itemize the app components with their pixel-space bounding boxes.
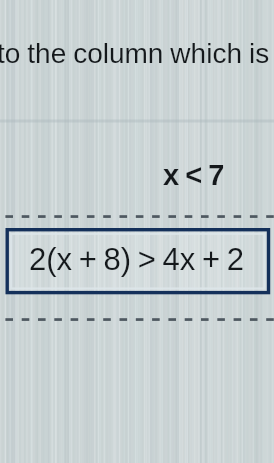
staticText: to the column which is bbox=[0, 38, 270, 69]
button[interactable]: 2(x + 8) > 4x + 2 bbox=[7, 229, 269, 293]
staticText: 2(x + 8) > 4x + 2 bbox=[29, 242, 244, 277]
staticText: x < 7 bbox=[163, 159, 225, 191]
